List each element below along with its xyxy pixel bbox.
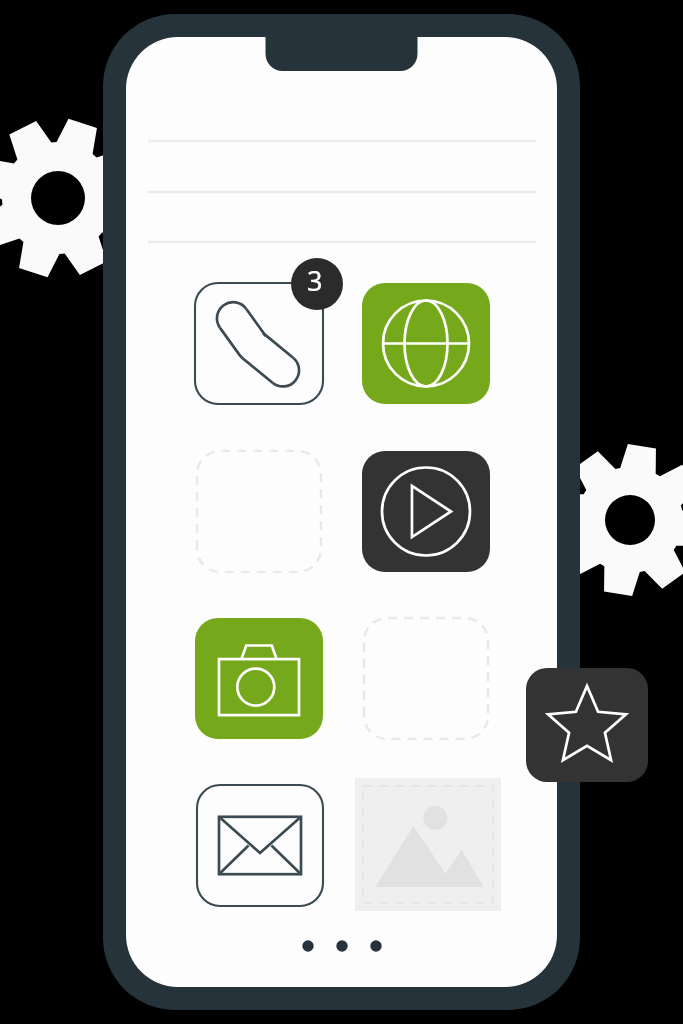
button[interactable]: Empty app slot: [362, 618, 490, 739]
staticText: 3: [307, 262, 323, 299]
button[interactable]: Page 2: [334, 938, 351, 955]
button[interactable]: Play video: [362, 451, 490, 572]
button[interactable]: Mail: [195, 785, 323, 906]
button[interactable]: Page 1: [300, 938, 317, 955]
button[interactable]: Phone, 3 missed calls: [195, 283, 323, 404]
button[interactable]: Photos: [355, 778, 501, 911]
button[interactable]: Browser: [362, 283, 490, 404]
button[interactable]: Empty app slot: [195, 451, 323, 572]
button[interactable]: Camera: [195, 618, 323, 739]
button[interactable]: Favourites: [526, 668, 648, 782]
button[interactable]: Page 3: [368, 938, 385, 955]
